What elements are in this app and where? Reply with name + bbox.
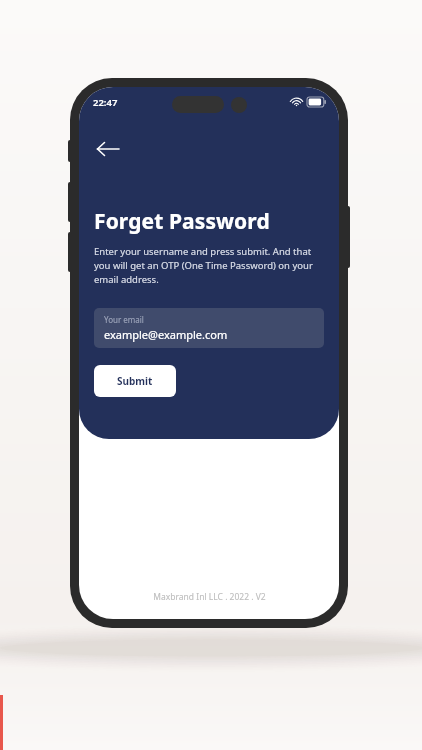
button[interactable]: Submit (94, 365, 176, 397)
button[interactable]: Back (88, 129, 128, 169)
staticText: Forget Password (94, 207, 270, 236)
button[interactable]: Your email (94, 308, 324, 348)
staticText: Enter your username and press submit. An… (94, 245, 324, 286)
staticText: example@example.com (104, 327, 228, 342)
staticText: Submit (117, 374, 153, 388)
staticText: Your email (104, 314, 144, 325)
staticText: 22:47 (93, 96, 118, 109)
staticText: Maxbrand Inl LLC . 2022 . V2 (153, 591, 266, 603)
